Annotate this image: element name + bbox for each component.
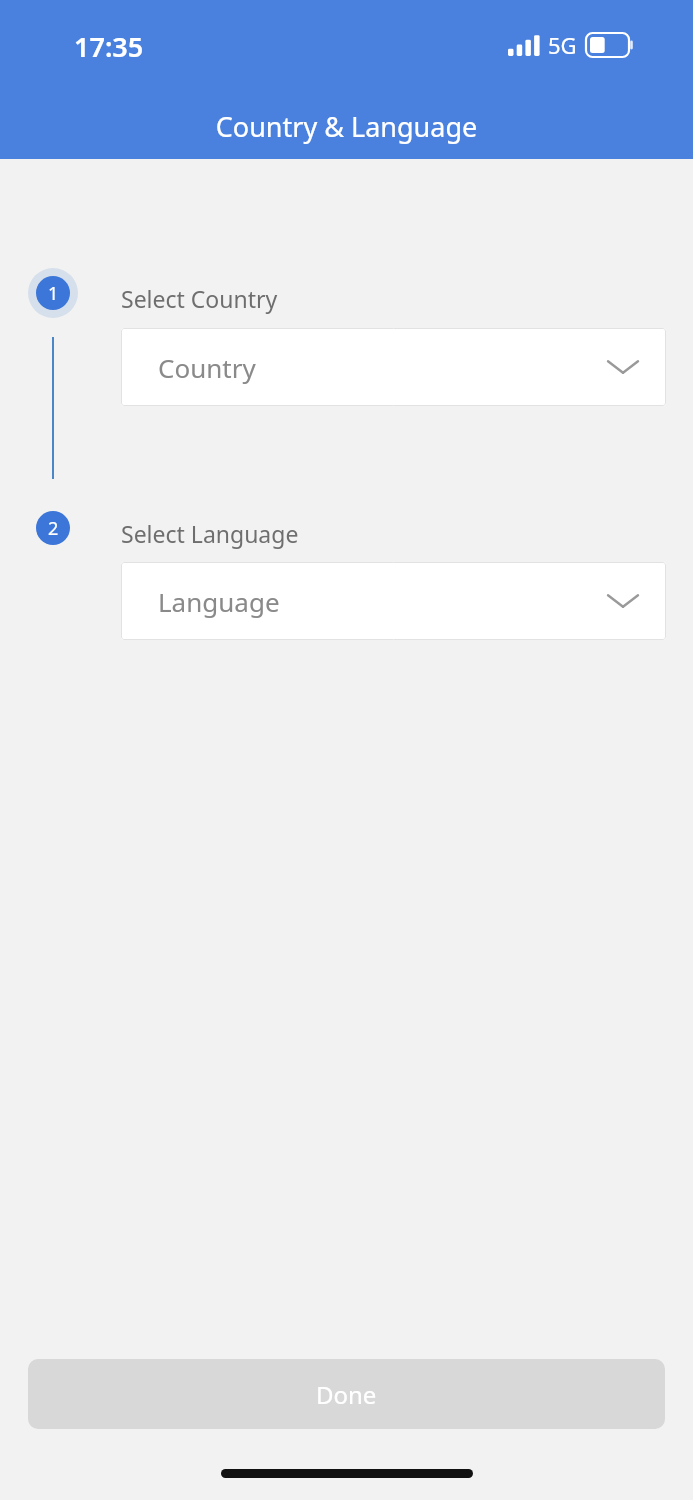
staticText: 1 (48, 281, 59, 306)
staticText: Country (158, 350, 256, 385)
staticText: 17:35 (74, 28, 144, 65)
other: Expand Country options (608, 358, 638, 376)
other: Expand Language options (608, 592, 638, 610)
button[interactable]: Language (121, 562, 666, 640)
button[interactable]: Done (28, 1359, 665, 1429)
staticText: Select Language (121, 518, 299, 549)
staticText: 2 (48, 516, 59, 541)
staticText: Language (158, 584, 280, 619)
button[interactable]: Country (121, 328, 666, 406)
staticText: 5G (548, 30, 577, 60)
staticText: Select Country (121, 283, 278, 314)
staticText: Country & Language (0, 108, 693, 145)
staticText: Done (316, 1378, 377, 1411)
